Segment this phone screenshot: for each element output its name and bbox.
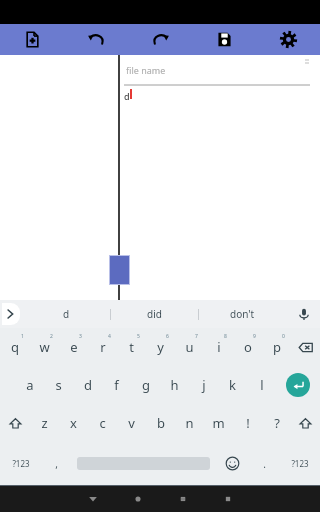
button[interactable]: Space <box>72 442 215 485</box>
staticText: 2 <box>50 333 53 340</box>
button[interactable]: Home <box>115 485 160 512</box>
staticText: , <box>55 457 58 471</box>
button[interactable]: w <box>30 328 59 366</box>
staticText: y <box>157 338 164 356</box>
staticText: o <box>244 338 252 356</box>
button[interactable]: Backspace <box>291 328 320 366</box>
button[interactable]: Enter <box>276 366 320 404</box>
staticText: l <box>260 376 264 394</box>
button[interactable]: Save <box>192 24 256 55</box>
button[interactable]: g <box>131 366 160 404</box>
button[interactable]: More suggestions <box>2 303 20 325</box>
button[interactable]: z <box>30 404 59 442</box>
staticText: 5 <box>137 333 140 340</box>
button[interactable]: f <box>102 366 131 404</box>
button[interactable]: v <box>117 404 146 442</box>
button[interactable]: u <box>175 328 204 366</box>
button[interactable]: New document <box>0 24 64 55</box>
button[interactable]: y <box>146 328 175 366</box>
button[interactable]: , <box>41 442 72 485</box>
button[interactable]: ?123 <box>0 442 41 485</box>
button[interactable]: p <box>262 328 291 366</box>
button[interactable]: d <box>22 300 110 328</box>
staticText: n <box>185 414 194 432</box>
button[interactable]: n <box>175 404 204 442</box>
staticText: p <box>273 338 281 356</box>
button[interactable]: s <box>44 366 73 404</box>
staticText: k <box>229 376 236 394</box>
staticText: file name <box>126 64 166 76</box>
button[interactable]: Shift <box>0 404 30 442</box>
button[interactable]: ?123 <box>280 442 320 485</box>
staticText: ? <box>274 414 280 432</box>
button[interactable]: Recents <box>205 485 250 512</box>
staticText: e <box>70 338 78 356</box>
staticText: a <box>26 376 34 394</box>
button[interactable]: Back <box>70 485 115 512</box>
button[interactable]: o <box>233 328 262 366</box>
staticText: 4 <box>108 333 111 340</box>
button[interactable]: ? <box>262 404 291 442</box>
staticText: ?123 <box>291 458 309 469</box>
staticText: j <box>202 376 206 394</box>
staticText: d <box>84 376 92 394</box>
staticText: s <box>55 376 62 394</box>
button[interactable]: j <box>189 366 218 404</box>
staticText: ! <box>246 414 250 432</box>
button[interactable]: q <box>0 328 30 366</box>
button[interactable]: Redo <box>128 24 192 55</box>
button[interactable]: k <box>218 366 247 404</box>
staticText: q <box>11 338 19 356</box>
button[interactable]: Undo <box>64 24 128 55</box>
staticText: m <box>212 414 225 432</box>
button[interactable]: Voice input <box>288 300 320 328</box>
staticText: 7 <box>195 333 198 340</box>
staticText: don't <box>230 307 255 321</box>
staticText: 3 <box>79 333 82 340</box>
staticText: did <box>147 307 162 321</box>
staticText: 9 <box>253 333 256 340</box>
staticText: g <box>142 376 150 394</box>
button[interactable]: i <box>204 328 233 366</box>
staticText: v <box>128 414 135 432</box>
button[interactable]: h <box>160 366 189 404</box>
button[interactable]: . <box>249 442 280 485</box>
staticText: 1 <box>21 333 24 340</box>
button[interactable]: did <box>111 300 198 328</box>
staticText: h <box>170 376 179 394</box>
button[interactable]: Shift <box>291 404 320 442</box>
button[interactable]: Settings <box>256 24 320 55</box>
button[interactable]: r <box>88 328 117 366</box>
staticText: b <box>157 414 165 432</box>
button[interactable]: ! <box>233 404 262 442</box>
staticText: i <box>217 338 221 356</box>
staticText: 6 <box>166 333 169 340</box>
button[interactable]: t <box>117 328 146 366</box>
button[interactable]: l <box>247 366 276 404</box>
staticText: t <box>129 338 134 356</box>
button[interactable]: m <box>204 404 233 442</box>
button[interactable]: e <box>59 328 88 366</box>
staticText: u <box>185 338 194 356</box>
button[interactable]: c <box>88 404 117 442</box>
staticText: ?123 <box>12 458 30 469</box>
staticText: r <box>100 338 106 356</box>
button[interactable]: don't <box>199 300 286 328</box>
button[interactable]: Emoji <box>215 442 249 485</box>
staticText: d <box>124 90 130 102</box>
button[interactable]: a <box>15 366 44 404</box>
staticText: c <box>99 414 106 432</box>
staticText: z <box>41 414 48 432</box>
button[interactable]: Switch keyboard <box>160 485 205 512</box>
staticText: x <box>70 414 77 432</box>
staticText: 0 <box>282 333 285 340</box>
staticText: . <box>263 457 266 471</box>
button[interactable]: x <box>59 404 88 442</box>
staticText: d <box>63 307 70 321</box>
button[interactable]: b <box>146 404 175 442</box>
staticText: 8 <box>224 333 227 340</box>
button[interactable]: d <box>73 366 102 404</box>
staticText: w <box>39 338 50 356</box>
staticText: f <box>114 376 119 394</box>
